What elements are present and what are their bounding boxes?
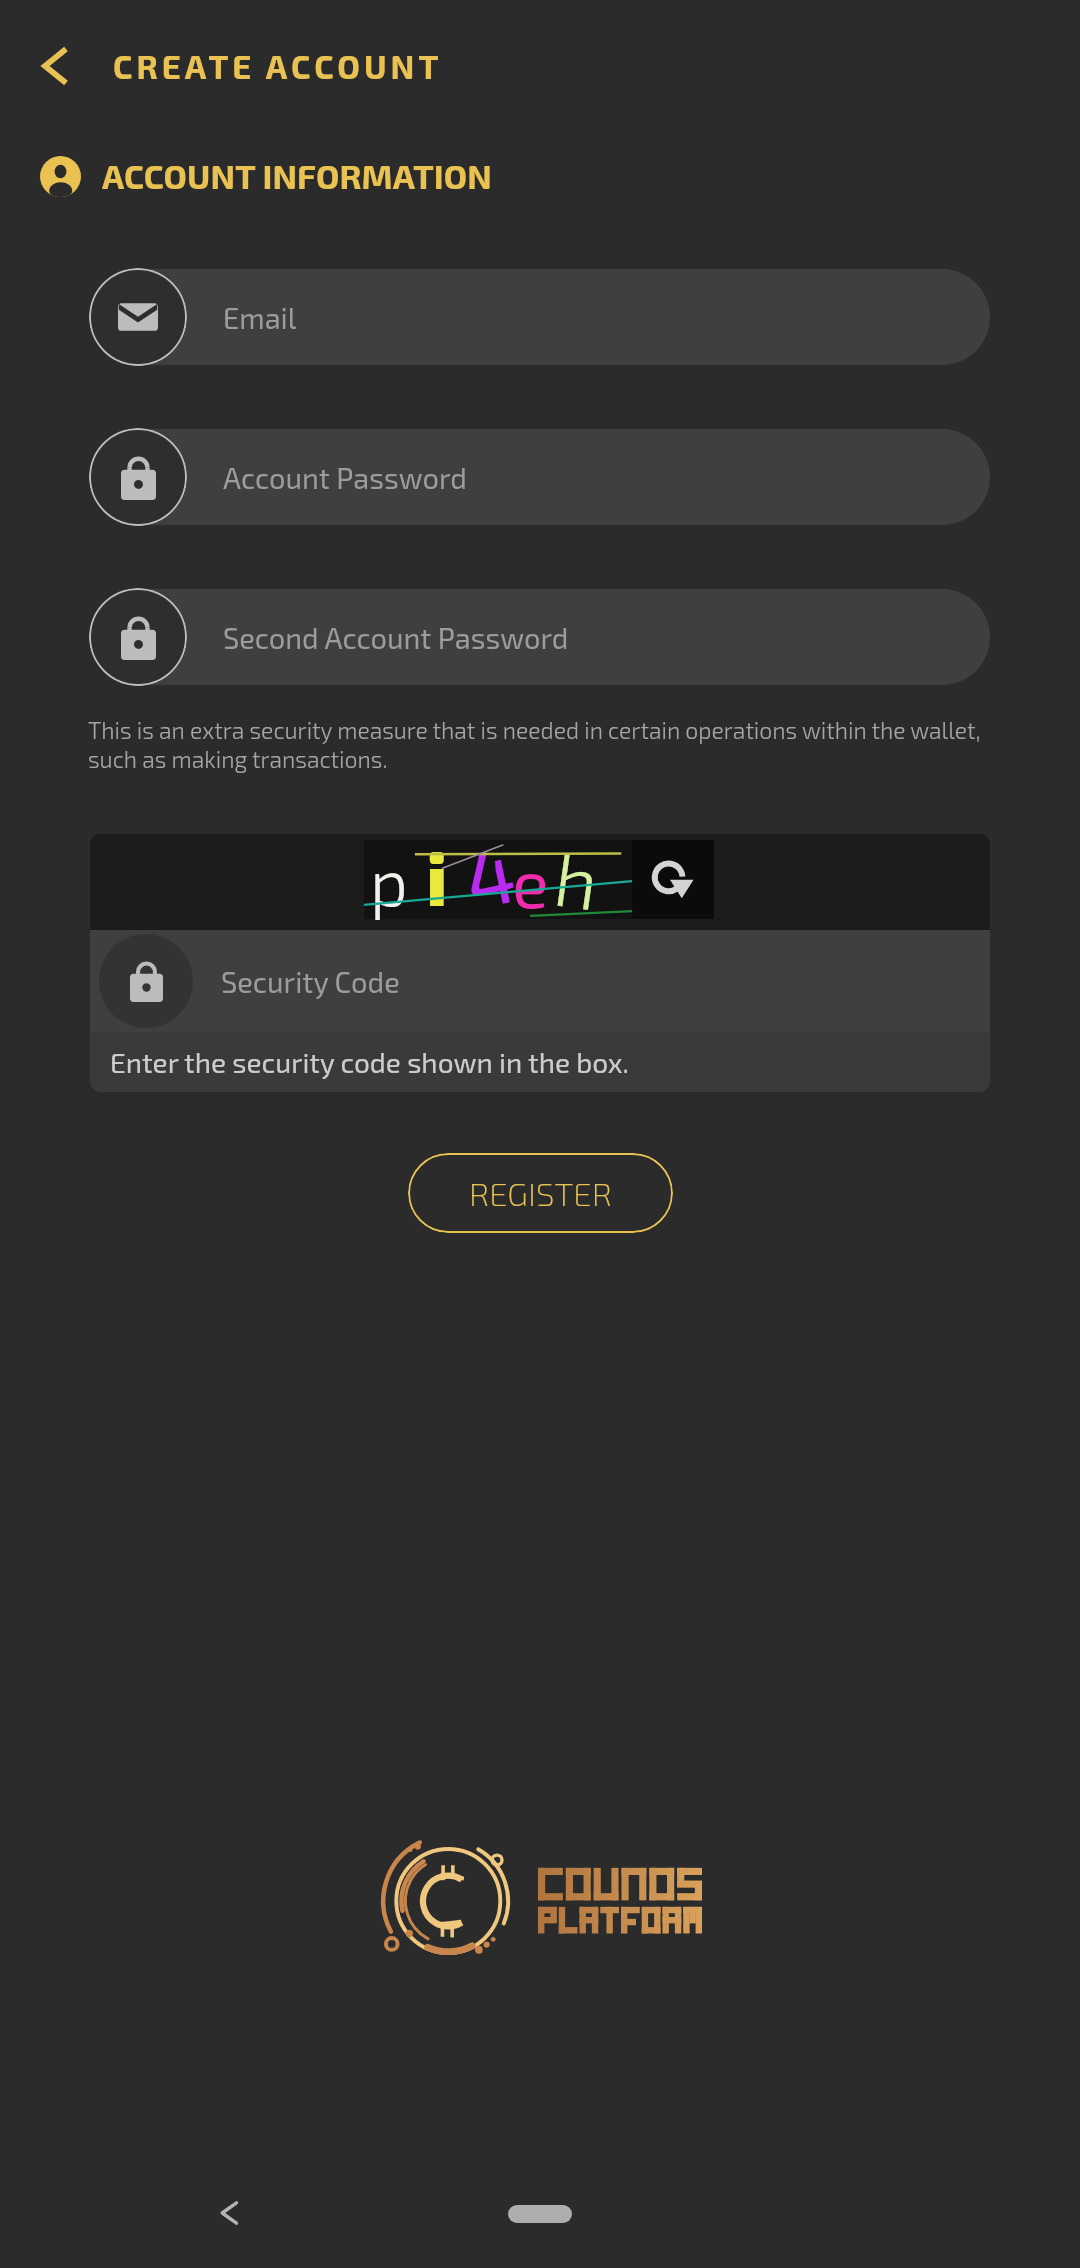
button[interactable]: Back bbox=[20, 22, 90, 110]
button[interactable]: Refresh captcha bbox=[632, 840, 714, 919]
staticText: CREATE ACCOUNT bbox=[113, 46, 443, 86]
staticText: Second Account Password bbox=[223, 620, 569, 655]
staticText: ACCOUNT INFORMATION bbox=[102, 155, 492, 196]
staticText: i bbox=[426, 834, 448, 911]
staticText: Email bbox=[223, 300, 297, 335]
staticText: h bbox=[551, 834, 604, 916]
staticText: REGISTER bbox=[469, 1173, 612, 1213]
staticText: Enter the security code shown in the box… bbox=[110, 1045, 629, 1079]
button[interactable]: Security Code bbox=[90, 930, 990, 1032]
button[interactable]: Second Account Password bbox=[90, 589, 990, 685]
button[interactable]: System back bbox=[188, 2172, 270, 2254]
staticText: Security Code bbox=[221, 964, 400, 999]
staticText: p bbox=[370, 840, 408, 919]
staticText: Account Password bbox=[223, 460, 467, 495]
button[interactable]: REGISTER bbox=[408, 1153, 673, 1233]
button[interactable]: Captcha image bbox=[364, 840, 632, 919]
button[interactable]: Email bbox=[90, 269, 990, 365]
staticText: e bbox=[512, 840, 549, 919]
button[interactable]: Account Password bbox=[90, 429, 990, 525]
staticText: 4 bbox=[456, 834, 521, 911]
staticText: This is an extra security measure that i… bbox=[88, 716, 1008, 773]
